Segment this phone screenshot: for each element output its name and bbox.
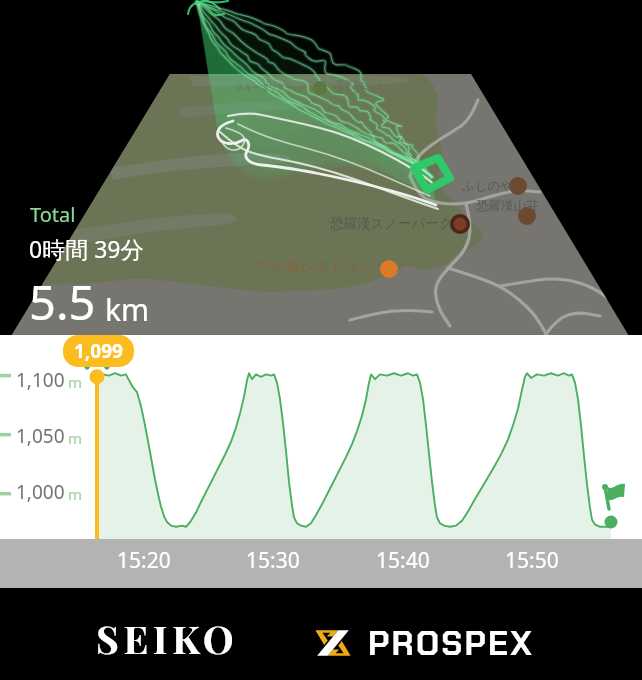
staticText: m xyxy=(68,372,83,392)
staticText: SEIKO xyxy=(96,612,239,664)
staticText: 15:20 xyxy=(117,546,171,575)
button[interactable]: ブナ坂レストラン xyxy=(0,0,642,335)
staticText: 15:30 xyxy=(246,546,300,575)
staticText: 1,050 xyxy=(16,423,65,449)
staticText: 0時間 39分 xyxy=(29,233,144,264)
staticText: 1,000 xyxy=(16,479,65,505)
staticText: m xyxy=(68,484,83,504)
staticText: ブナ坂レストラン xyxy=(256,258,375,276)
staticText: 1,099 xyxy=(74,338,123,364)
staticText: キャンプ場ロ xyxy=(336,85,385,95)
staticText: 15:50 xyxy=(505,546,559,575)
button[interactable]: Prospex emblem xyxy=(311,621,534,664)
staticText: Total xyxy=(30,201,76,228)
staticText: 1,100 xyxy=(16,367,65,393)
staticText: km xyxy=(105,289,150,330)
staticText: 恐羅漢スノーパーク xyxy=(330,215,453,232)
staticText: 恐羅漢山荘 xyxy=(476,198,539,214)
button[interactable]: 1,100 xyxy=(0,335,642,588)
staticText: ふしのや xyxy=(462,178,514,194)
button[interactable]: SEIKO xyxy=(96,612,239,664)
staticText: 15:40 xyxy=(376,546,430,575)
staticText: PROSPEX xyxy=(368,622,534,665)
staticText: m xyxy=(68,428,83,448)
staticText: 5.5 xyxy=(29,270,96,334)
button[interactable]: 1,099 xyxy=(74,338,123,364)
staticText: 恐羅漢うどん xyxy=(336,78,385,88)
staticText: スキー場リフト xyxy=(236,82,293,92)
other: Prospex emblem xyxy=(311,627,355,659)
